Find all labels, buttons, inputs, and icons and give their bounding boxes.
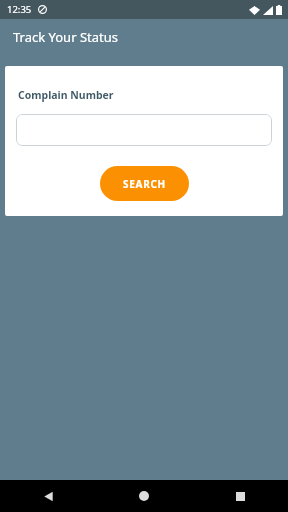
button[interactable]: Back [0,480,96,512]
button[interactable]: SEARCH [100,166,189,201]
button[interactable]: Home [96,480,192,512]
staticText: Complain Number [18,88,114,102]
staticText: SEARCH [123,177,166,191]
button[interactable] [16,114,272,146]
staticText: 12:35 [7,3,32,16]
staticText: Track Your Status [13,28,118,46]
button[interactable]: Recent apps [192,480,288,512]
